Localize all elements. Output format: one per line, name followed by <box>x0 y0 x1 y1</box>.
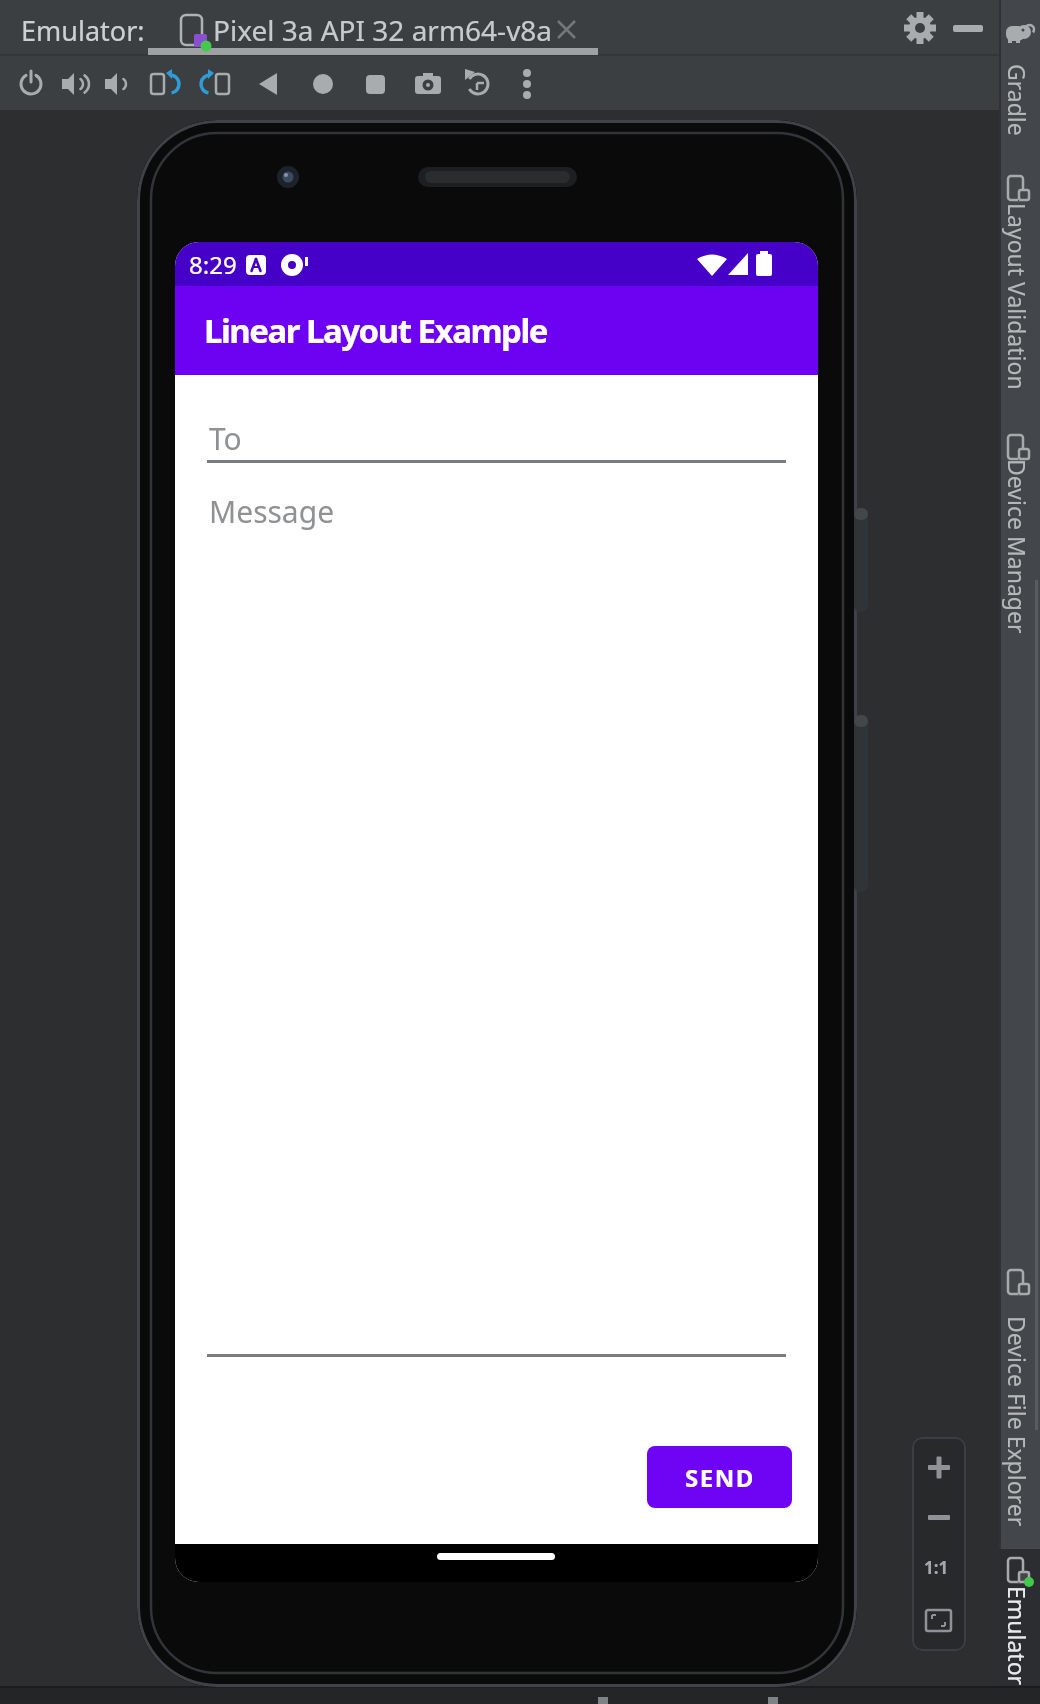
button[interactable] <box>194 62 238 106</box>
button[interactable] <box>10 62 52 106</box>
staticText: 1:1 <box>924 1556 949 1579</box>
button[interactable]: SEND <box>647 1446 792 1508</box>
button[interactable] <box>52 62 94 106</box>
button[interactable] <box>406 62 450 106</box>
button[interactable] <box>353 62 397 106</box>
button[interactable] <box>914 1595 964 1645</box>
staticText: Gradle <box>1002 64 1033 136</box>
button[interactable] <box>1000 10 1040 170</box>
button[interactable] <box>457 62 501 106</box>
button[interactable]: To <box>209 418 609 462</box>
button[interactable]: Message <box>209 491 609 535</box>
staticText: Layout Validation <box>1002 203 1033 390</box>
button[interactable] <box>898 6 942 50</box>
staticText: Emulator <box>1002 1586 1033 1686</box>
button[interactable] <box>247 62 291 106</box>
staticText: Pixel 3a API 32 arm64-v8a <box>213 11 553 47</box>
button[interactable] <box>914 1445 964 1491</box>
button[interactable] <box>999 1549 1040 1693</box>
staticText: 8:29 <box>189 248 237 281</box>
button[interactable] <box>1000 1265 1040 1550</box>
button[interactable] <box>301 62 345 106</box>
button[interactable] <box>1000 430 1040 640</box>
staticText: Emulator: <box>21 12 145 46</box>
staticText: SEND <box>685 1461 755 1494</box>
staticText: To <box>209 418 242 459</box>
staticText: Device Manager <box>1002 459 1033 634</box>
button[interactable] <box>95 62 137 106</box>
staticText: Linear Layout Example <box>204 308 547 353</box>
button[interactable] <box>142 62 186 106</box>
button[interactable] <box>946 6 990 50</box>
button[interactable] <box>914 1545 964 1591</box>
staticText: Device File Explorer <box>1002 1316 1033 1527</box>
button[interactable] <box>1000 170 1040 390</box>
button[interactable] <box>914 1495 964 1541</box>
button[interactable] <box>553 14 583 44</box>
staticText: Message <box>209 491 335 532</box>
button[interactable] <box>504 62 548 106</box>
button[interactable]: Pixel 3a API 32 arm64-v8a <box>213 11 613 47</box>
